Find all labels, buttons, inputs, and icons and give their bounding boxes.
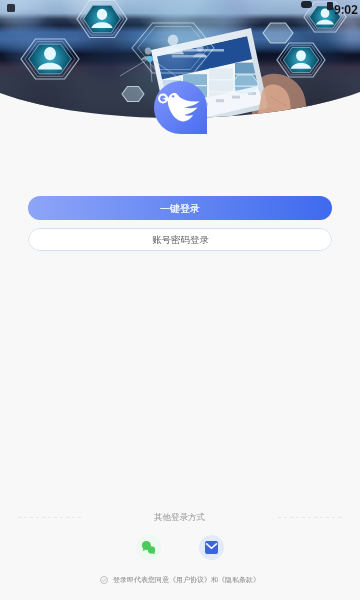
staticText: 9:02 (334, 1, 358, 17)
staticText: 登录即代表您同意《用户协议》和《隐私条款》 (113, 575, 260, 584)
button[interactable]: 登录即代表您同意《用户协议》和《隐私条款》 (98, 575, 262, 584)
button[interactable]: 账号密码登录 (28, 228, 332, 251)
staticText: 一键登录 (160, 202, 200, 215)
staticText: 账号密码登录 (152, 234, 209, 246)
button[interactable]: 一键登录 (28, 196, 332, 220)
button[interactable]: WeChat login (136, 535, 161, 560)
button[interactable]: Email login (199, 535, 224, 560)
staticText: 其他登录方式 (154, 512, 205, 523)
